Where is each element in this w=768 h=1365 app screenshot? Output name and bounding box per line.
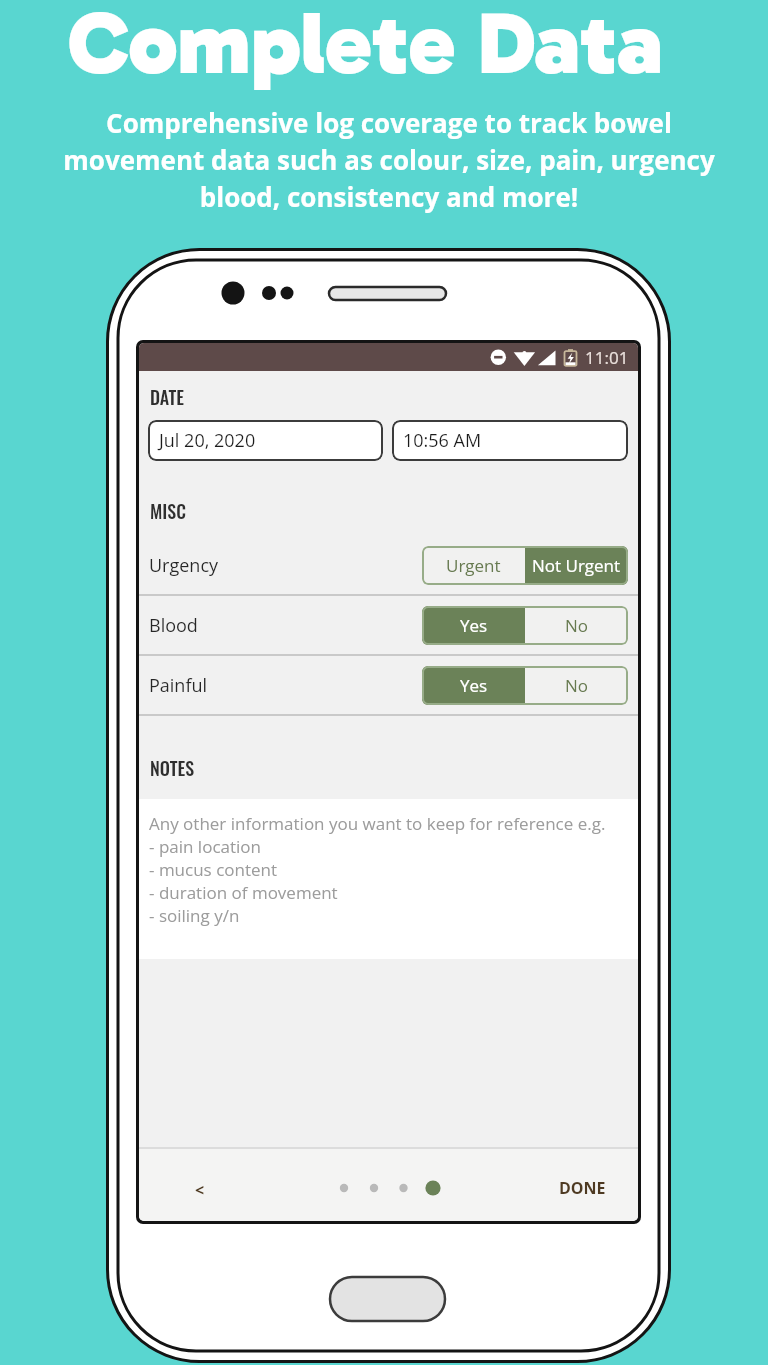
staticText: Not Urgent [532,554,621,577]
staticText: DATE [150,384,184,411]
staticText: No [565,614,589,637]
staticText: Yes [460,674,488,697]
button[interactable]: Jul 20, 2020 [148,420,383,461]
button[interactable]: Back [186,1176,214,1204]
staticText: Yes [460,614,488,637]
staticText: Comprehensive log coverage to track bowe… [59,105,719,214]
button[interactable]: No [525,606,628,645]
button[interactable]: Any other information you want to keep f… [139,799,638,959]
button[interactable]: 10:56 AM [392,420,628,461]
button[interactable]: Yes [422,666,525,705]
staticText: Painful [149,673,208,698]
staticText: 11:01 [585,346,629,369]
button[interactable]: Not Urgent [525,546,628,585]
staticText: MISC [150,498,186,525]
staticText: DONE [559,1177,606,1199]
button[interactable]: DONE [559,1177,606,1199]
button[interactable]: No [525,666,628,705]
staticText: Blood [149,613,198,638]
staticText: Complete Data [68,0,663,96]
staticText: Urgent [446,554,501,577]
button[interactable]: Urgent [422,546,525,585]
staticText: Jul 20, 2020 [159,428,256,453]
staticText: NOTES [150,755,195,782]
staticText: 10:56 AM [403,428,482,453]
button[interactable]: Yes [422,606,525,645]
staticText: Any other information you want to keep f… [149,812,606,927]
staticText: No [565,674,589,697]
staticText: < [195,1179,205,1201]
staticText: Urgency [149,553,219,578]
